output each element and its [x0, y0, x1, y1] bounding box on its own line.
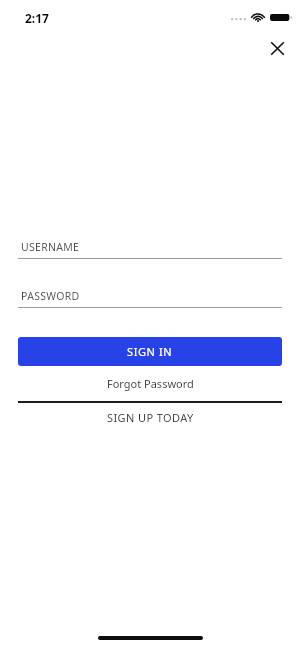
staticText: SIGN IN [127, 344, 173, 359]
button[interactable]: USERNAME [18, 240, 282, 259]
staticText: 2:17 [25, 10, 49, 26]
button[interactable]: Forgot Password [18, 376, 282, 391]
button[interactable]: SIGN UP TODAY [18, 410, 282, 425]
button[interactable]: SIGN IN [18, 337, 282, 366]
button[interactable]: PASSWORD [18, 289, 282, 308]
staticText: USERNAME [21, 240, 80, 254]
button[interactable]: Close [262, 33, 292, 63]
staticText: SIGN UP TODAY [107, 410, 194, 425]
staticText: Forgot Password [107, 376, 194, 391]
staticText: PASSWORD [21, 289, 80, 303]
